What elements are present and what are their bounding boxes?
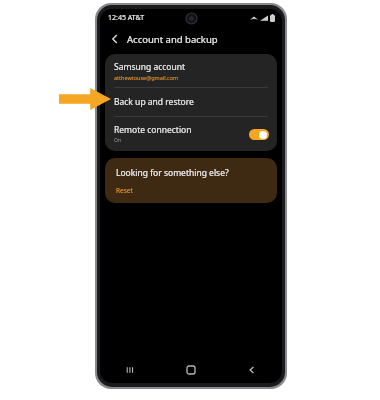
button[interactable]: Back xyxy=(221,357,282,383)
button[interactable]: Back xyxy=(107,31,123,47)
staticText: atthewtouse@gmail.com xyxy=(114,74,179,81)
staticText: Remote connection xyxy=(114,124,192,136)
staticText: Account and backup xyxy=(127,33,218,46)
staticText: 12:45 AT&T xyxy=(108,13,145,23)
staticText: On xyxy=(114,137,121,144)
staticText: Samsung account xyxy=(114,61,186,73)
button[interactable]: Looking for something else? xyxy=(105,158,277,203)
button[interactable]: Remote connection toggle xyxy=(249,129,269,140)
button[interactable]: Samsung account xyxy=(105,54,277,87)
button[interactable]: Reset xyxy=(116,186,133,195)
button[interactable]: Back up and restore xyxy=(105,88,277,116)
staticText: Looking for something else? xyxy=(116,167,229,179)
button[interactable]: Remote connection xyxy=(105,117,277,151)
staticText: Back up and restore xyxy=(114,96,194,108)
button[interactable]: Recent apps xyxy=(100,357,160,383)
button[interactable]: Home xyxy=(160,357,221,383)
